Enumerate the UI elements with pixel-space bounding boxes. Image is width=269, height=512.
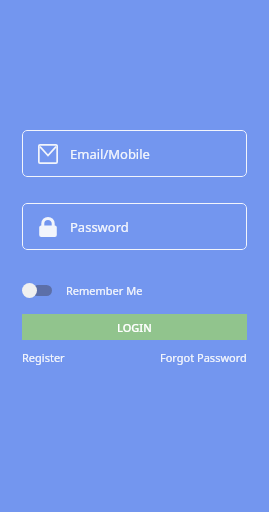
button[interactable]: Password — [22, 203, 247, 250]
staticText: Email/Mobile — [70, 145, 150, 163]
button[interactable]: LOGIN — [22, 314, 247, 340]
button[interactable]: Register — [22, 350, 65, 365]
staticText: LOGIN — [117, 320, 152, 335]
button[interactable]: Forgot Password — [160, 350, 247, 365]
staticText: Password — [70, 218, 129, 236]
button[interactable]: Remember Me — [22, 278, 143, 302]
staticText: Register — [22, 350, 65, 365]
staticText: Forgot Password — [160, 350, 247, 365]
staticText: Remember Me — [66, 283, 143, 298]
button[interactable]: Email/Mobile — [22, 130, 247, 177]
